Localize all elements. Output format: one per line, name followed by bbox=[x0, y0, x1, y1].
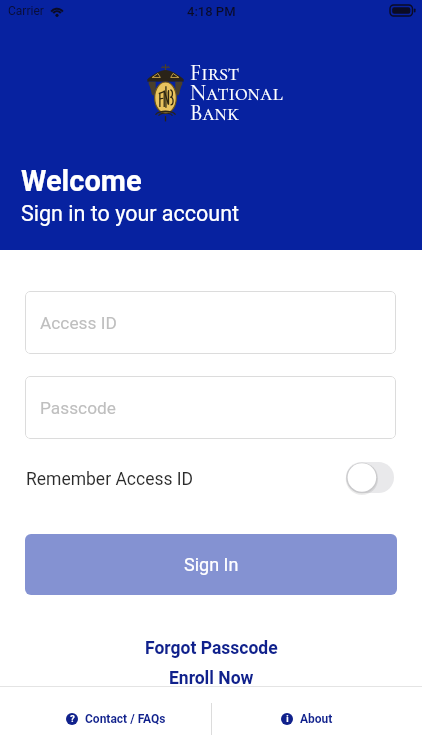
staticText: Enroll Now bbox=[169, 668, 254, 689]
staticText: ? bbox=[70, 714, 75, 725]
staticText: Sign In bbox=[184, 554, 239, 575]
button[interactable]: i bbox=[211, 688, 422, 750]
button[interactable]: ? bbox=[0, 688, 211, 750]
button[interactable]: Access ID bbox=[25, 291, 396, 354]
staticText: Sign in to your account bbox=[21, 201, 240, 226]
button[interactable]: Sign In bbox=[25, 534, 397, 595]
button[interactable]: Passcode bbox=[25, 376, 396, 439]
button[interactable]: Enroll Now bbox=[0, 664, 422, 693]
staticText: Carrier bbox=[8, 4, 44, 18]
staticText: i bbox=[286, 714, 289, 725]
staticText: First National Bank bbox=[190, 60, 283, 127]
button[interactable]: Remember Access ID switch, off bbox=[346, 462, 394, 493]
staticText: Forgot Passcode bbox=[145, 638, 278, 659]
other: Wi-Fi signal bbox=[49, 5, 65, 17]
staticText: Remember Access ID bbox=[26, 469, 194, 490]
staticText: About bbox=[300, 712, 333, 726]
button[interactable]: Forgot Passcode bbox=[0, 634, 422, 663]
other: First National Bank crest bbox=[147, 64, 184, 122]
staticText: Access ID bbox=[40, 313, 117, 333]
staticText: Contact / FAQs bbox=[85, 712, 166, 726]
staticText: Welcome bbox=[21, 164, 142, 198]
staticText: 4:18 PM bbox=[187, 4, 236, 19]
staticText: Passcode bbox=[40, 398, 116, 418]
other: Battery full bbox=[390, 5, 415, 16]
